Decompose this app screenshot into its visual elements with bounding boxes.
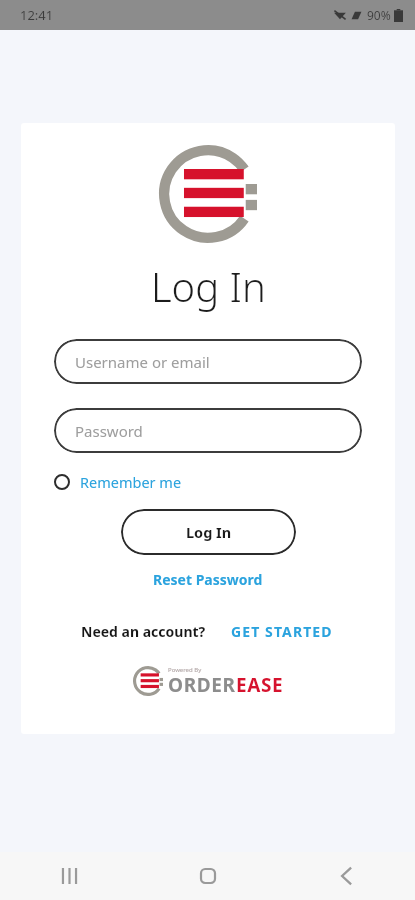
button[interactable]: GET STARTED — [228, 619, 336, 644]
staticText: ORDER — [168, 672, 236, 698]
button[interactable]: Reset Password — [147, 567, 269, 592]
button[interactable]: Powered By — [133, 664, 284, 698]
button[interactable]: Username or email — [54, 339, 362, 384]
staticText: 12:41 — [20, 6, 54, 24]
button[interactable]: Back — [319, 852, 373, 900]
staticText: GET STARTED — [231, 622, 333, 641]
staticText: Password — [75, 421, 143, 441]
staticText: EASE — [236, 672, 284, 698]
button[interactable]: Recent apps — [42, 852, 96, 900]
staticText: Remember me — [80, 472, 182, 492]
button[interactable]: Remember me — [54, 472, 362, 492]
staticText: Need an account? — [81, 622, 206, 641]
staticText: Username or email — [75, 352, 210, 372]
button[interactable]: Log In — [121, 509, 296, 555]
staticText: Log In — [151, 259, 266, 313]
staticText: Log In — [186, 522, 232, 542]
staticText: Reset Password — [153, 570, 263, 589]
staticText: 90% — [367, 7, 391, 23]
staticText: Powered By — [168, 666, 202, 674]
button[interactable]: Home — [181, 852, 235, 900]
button[interactable]: Password — [54, 408, 362, 453]
